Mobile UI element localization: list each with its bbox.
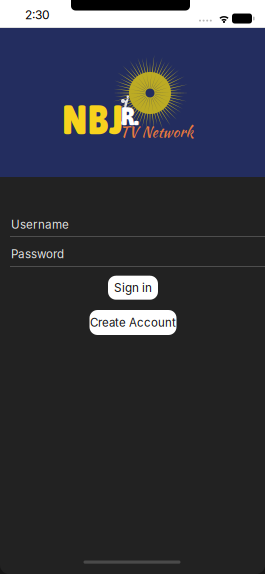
- staticText: Sign in: [114, 281, 152, 295]
- button[interactable]: Username: [0, 217, 265, 232]
- button[interactable]: Password: [0, 246, 265, 261]
- staticText: 2:30: [25, 8, 50, 22]
- button[interactable]: Sign in: [108, 276, 158, 300]
- staticText: Username: [11, 217, 69, 231]
- staticText: NBJ: [62, 96, 123, 143]
- staticText: Password: [11, 247, 64, 261]
- staticText: R.: [121, 100, 139, 131]
- button[interactable]: Create Account: [89, 310, 176, 335]
- staticText: Create Account: [90, 316, 176, 329]
- staticText: TV Network: [119, 121, 193, 142]
